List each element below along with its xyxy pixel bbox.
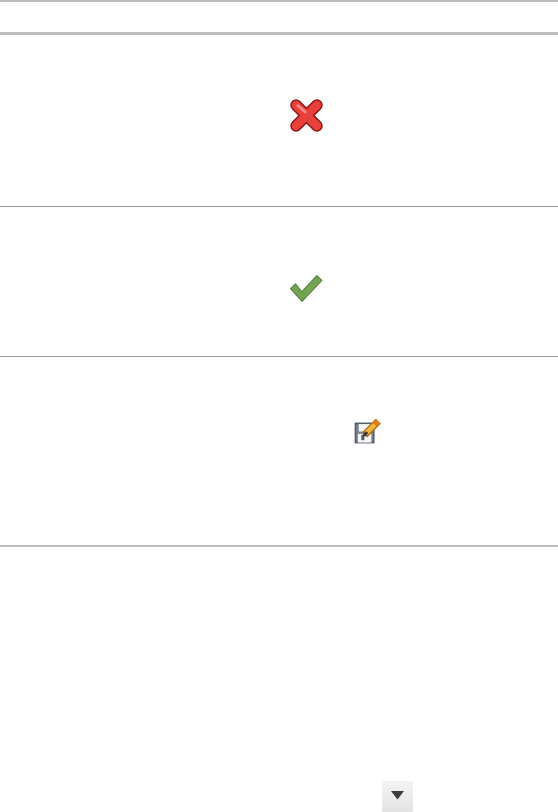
button[interactable]: Reject	[292, 101, 321, 130]
button[interactable]: Show more	[382, 781, 413, 812]
button[interactable]: Save and edit	[355, 420, 379, 444]
button[interactable]: Accept	[288, 271, 324, 307]
